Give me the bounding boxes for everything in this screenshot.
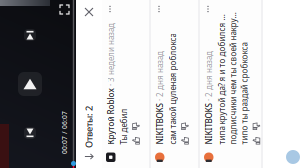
button[interactable]: NIKITBOKS	[66, 85, 234, 132]
staticText: Ответы: 2	[86, 17, 128, 29]
button[interactable]: Ответы: 2	[66, 10, 135, 36]
staticText: сам такой цуленая роблокса	[89, 102, 200, 112]
staticText: NIKITBOKS	[89, 88, 130, 99]
staticText: типа крутой да? я и то добился честно 10…	[89, 151, 221, 161]
staticText: · 2 дня назад	[133, 137, 183, 148]
button[interactable]: NIKITBOKS	[66, 134, 234, 168]
button[interactable]: Close	[210, 10, 234, 36]
staticText: Крутой Roblox	[89, 39, 145, 50]
staticText: NIKITBOKS	[89, 137, 130, 148]
staticText: · 3 недели назад	[148, 39, 211, 50]
staticText: · 2 дня назад	[133, 88, 183, 99]
button[interactable]: Крутой Roblox	[66, 36, 234, 83]
staticText: Ты дебил	[89, 53, 125, 63]
